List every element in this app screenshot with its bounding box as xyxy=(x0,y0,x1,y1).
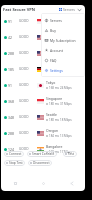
button[interactable]: 91 xyxy=(1,13,85,29)
staticText: Fast Secure VPN xyxy=(3,7,36,12)
staticText: GOOD xyxy=(19,99,29,103)
staticText: Singapore xyxy=(46,16,63,21)
staticText: FAQ xyxy=(50,58,57,63)
staticText: 18 Mbps xyxy=(60,38,72,42)
staticText: 288 xyxy=(8,51,14,56)
button[interactable]: Servers xyxy=(41,15,85,25)
staticText: Stop Test xyxy=(9,161,23,165)
staticText: Oregon xyxy=(46,128,59,133)
staticText: GOOD xyxy=(19,67,29,71)
staticText: GOOD xyxy=(19,147,29,151)
staticText: Tokyo xyxy=(46,80,56,85)
button[interactable]: Connect xyxy=(4,151,24,157)
staticText: 17 Mbps xyxy=(60,150,72,154)
button[interactable]: Smart Connect xyxy=(27,151,57,157)
staticText: GOOD xyxy=(19,83,29,87)
staticText: 184 ms xyxy=(49,134,59,138)
staticText: Servers xyxy=(50,18,62,23)
staticText: 42 xyxy=(8,35,12,40)
button[interactable]: My Subscription xyxy=(41,35,85,45)
staticText: 173 ms xyxy=(49,70,59,74)
staticText: GOOD xyxy=(19,115,29,119)
button[interactable]: Account xyxy=(41,45,85,55)
staticText: 124 xyxy=(8,147,14,152)
button[interactable]: 288 xyxy=(1,125,85,141)
staticText: GOOD xyxy=(19,35,29,39)
staticText: Smart Connect xyxy=(32,152,55,156)
staticText: Buy xyxy=(50,28,57,33)
button[interactable]: Settings xyxy=(41,65,85,75)
button[interactable]: Home xyxy=(39,179,48,188)
staticText: My Subscription xyxy=(50,38,76,43)
button[interactable]: Buy xyxy=(41,25,85,35)
staticText: Disconnect xyxy=(33,161,50,165)
staticText: Test xyxy=(68,152,75,156)
staticText: 18 Mbps xyxy=(60,118,72,122)
staticText: Oregon xyxy=(46,48,59,53)
button[interactable]: 91 xyxy=(1,77,85,93)
staticText: 173 ms xyxy=(49,150,59,154)
button[interactable]: 42 xyxy=(1,29,85,45)
staticText: Account xyxy=(50,48,63,53)
staticText: Connect xyxy=(9,152,22,156)
staticText: Settings xyxy=(50,68,63,73)
button[interactable]: 288 xyxy=(1,45,85,61)
staticText: 13 Mbps xyxy=(60,134,72,138)
button[interactable]: FAQ xyxy=(41,55,85,65)
staticText: 180 ms xyxy=(49,102,59,106)
staticText: 348 xyxy=(8,115,14,120)
staticText: GOOD xyxy=(19,51,29,55)
button[interactable]: Recents xyxy=(11,179,20,188)
staticText: 24 Mbps xyxy=(60,86,72,90)
button[interactable]: Back xyxy=(67,179,76,188)
button[interactable]: 368 xyxy=(1,93,85,109)
staticText: 91 xyxy=(8,19,12,24)
staticText: 180 ms xyxy=(49,38,59,42)
staticText: 185 xyxy=(8,67,14,72)
button[interactable]: 185 xyxy=(1,61,85,77)
staticText: Bangalore xyxy=(46,144,63,149)
staticText: Singapore xyxy=(46,96,63,101)
staticText: 17 Mbps xyxy=(60,70,72,74)
staticText: 31 Mbps xyxy=(60,102,72,106)
button[interactable]: Stop Test xyxy=(4,160,25,166)
button[interactable]: 348 xyxy=(1,109,85,125)
staticText: 180 ms xyxy=(49,118,59,122)
staticText: GOOD xyxy=(19,19,29,23)
button[interactable]: Test xyxy=(63,151,77,157)
staticText: Seattle xyxy=(46,32,57,37)
staticText: 91 xyxy=(8,83,12,88)
button[interactable]: Disconnect xyxy=(28,160,52,166)
button[interactable]: 124 xyxy=(1,141,85,157)
staticText: 288 xyxy=(8,131,14,136)
staticText: 168 ms xyxy=(49,86,59,90)
button[interactable]: Servers xyxy=(59,7,81,12)
staticText: Seattle xyxy=(46,112,57,117)
staticText: 368 xyxy=(8,99,14,104)
staticText: GOOD xyxy=(19,131,29,135)
staticText: Servers xyxy=(63,7,75,12)
